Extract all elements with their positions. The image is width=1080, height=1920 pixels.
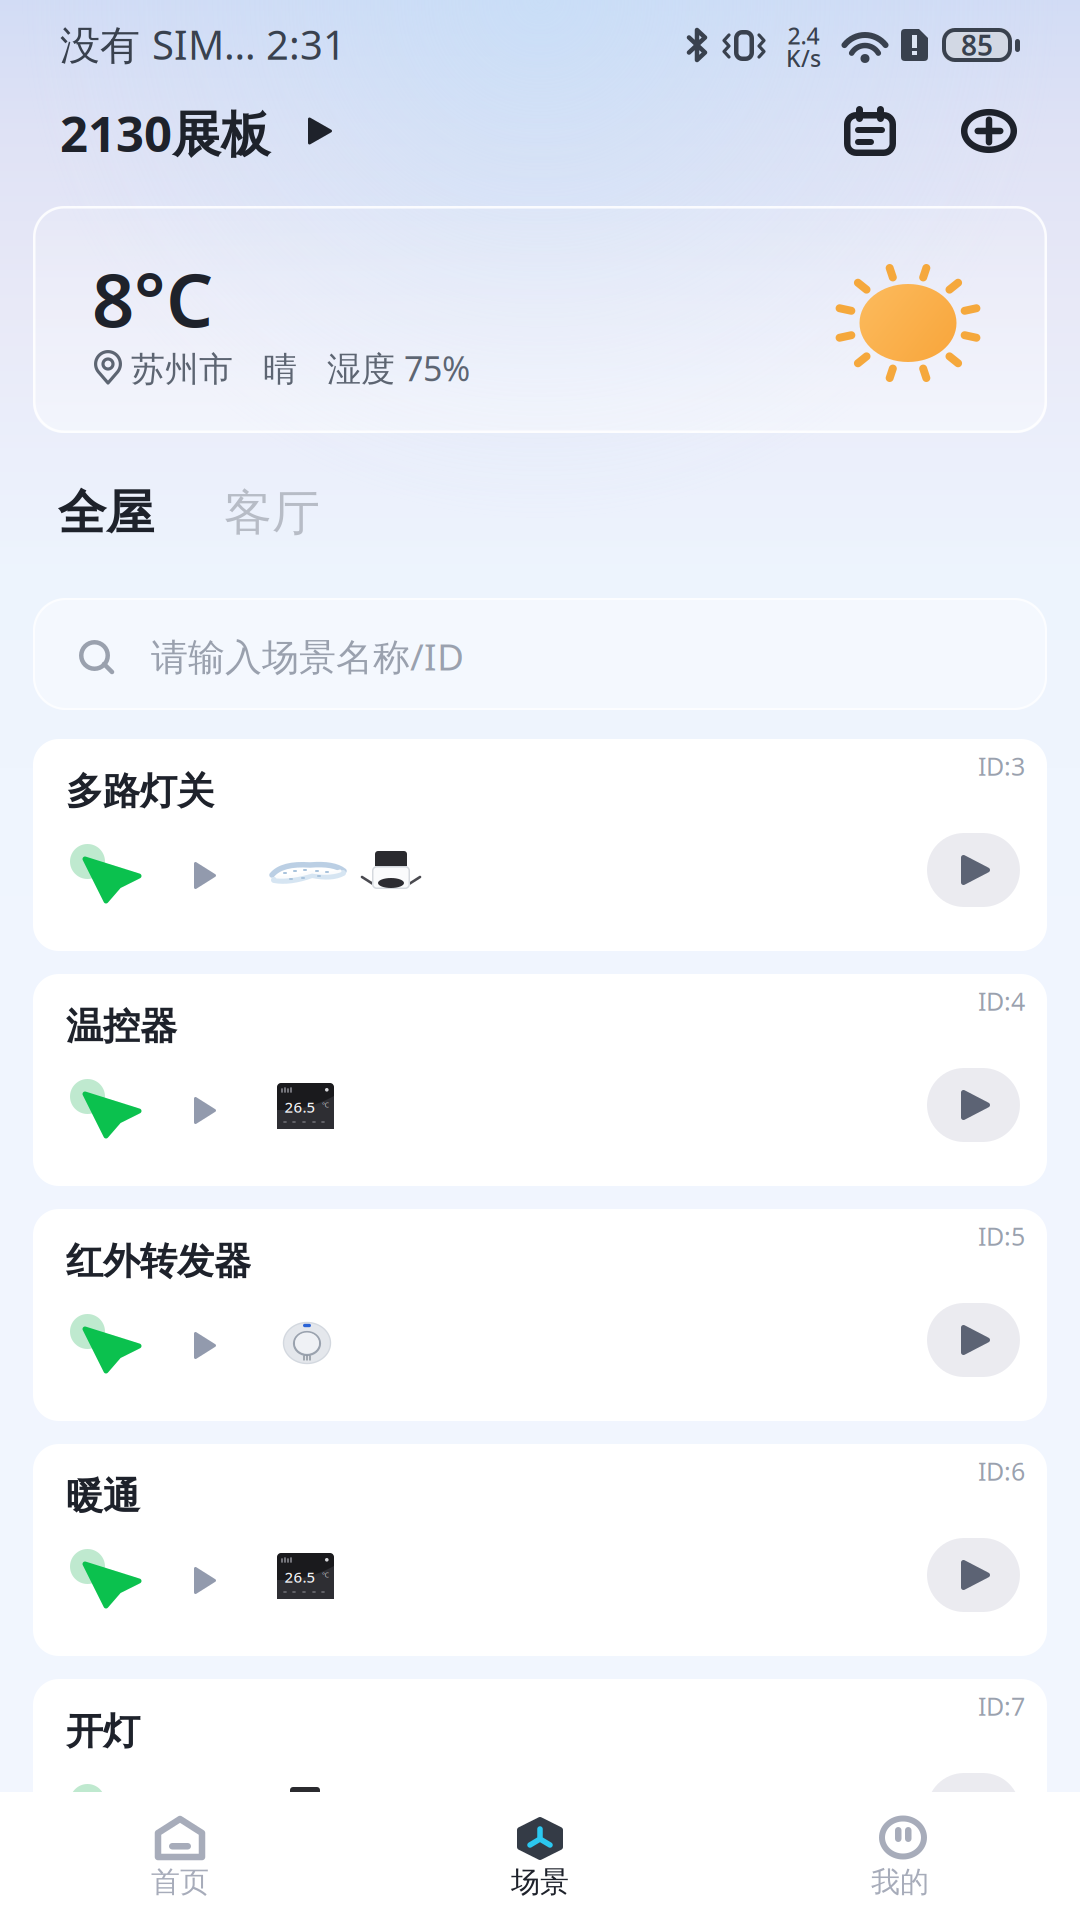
button[interactable]: 红外转发器 <box>33 1209 1047 1421</box>
button[interactable]: 暖通 <box>33 1444 1047 1656</box>
button[interactable]: 执行场景 <box>927 1303 1020 1377</box>
staticText: 多路灯关 <box>66 768 214 815</box>
staticText: 我的 <box>871 1864 929 1900</box>
button[interactable]: 我的 <box>720 1792 1080 1920</box>
staticText: 8°C <box>92 248 213 349</box>
button[interactable]: 客厅 <box>224 478 344 548</box>
staticText: 全屋 <box>58 483 154 543</box>
staticText: ID:3 <box>978 749 1025 783</box>
staticText: 2.4 <box>787 20 819 51</box>
button[interactable]: 执行场景 <box>927 1773 1020 1847</box>
staticText: 首页 <box>151 1864 209 1900</box>
button[interactable]: 开灯 <box>33 1679 1047 1891</box>
staticText: 请输入场景名称/ID <box>151 631 464 681</box>
button[interactable]: 日程 <box>835 96 905 166</box>
button[interactable]: 全屋 <box>58 478 178 548</box>
staticText: K/s <box>786 42 821 74</box>
button[interactable]: 请输入场景名称/ID <box>33 598 1047 710</box>
staticText: ℃ <box>322 1570 329 1579</box>
button[interactable]: 执行场景 <box>927 1068 1020 1142</box>
button[interactable]: 执行场景 <box>927 833 1020 907</box>
button[interactable]: 首页 <box>0 1792 360 1920</box>
button[interactable]: 温控器 <box>33 974 1047 1186</box>
staticText: 没有 SIM… 2:31 <box>60 17 346 71</box>
staticText: 26.5 <box>284 1567 315 1587</box>
button[interactable]: 多路灯关 <box>33 739 1047 951</box>
staticText: ID:6 <box>978 1454 1025 1488</box>
staticText: 温控器 <box>66 1003 177 1050</box>
staticText: 红外转发器 <box>66 1238 251 1285</box>
staticText: 苏州市 晴 湿度 75% <box>131 345 470 391</box>
staticText: 场景 <box>511 1864 569 1900</box>
staticText: 暖通 <box>66 1473 140 1520</box>
staticText: ℃ <box>322 1100 329 1109</box>
staticText: ID:4 <box>978 984 1025 1018</box>
staticText: 开灯 <box>66 1708 140 1755</box>
button[interactable]: 添加 <box>954 96 1024 166</box>
button[interactable]: 2130展板 <box>60 98 332 168</box>
staticText: ID:7 <box>978 1689 1025 1723</box>
button[interactable]: 执行场景 <box>927 1538 1020 1612</box>
staticText: 85 <box>961 26 993 64</box>
staticText: 26.5 <box>284 1097 315 1117</box>
button[interactable]: 场景 <box>360 1792 720 1920</box>
staticText: ID:5 <box>978 1219 1025 1253</box>
staticText: 客厅 <box>224 483 320 543</box>
staticText: 2130展板 <box>60 100 270 166</box>
